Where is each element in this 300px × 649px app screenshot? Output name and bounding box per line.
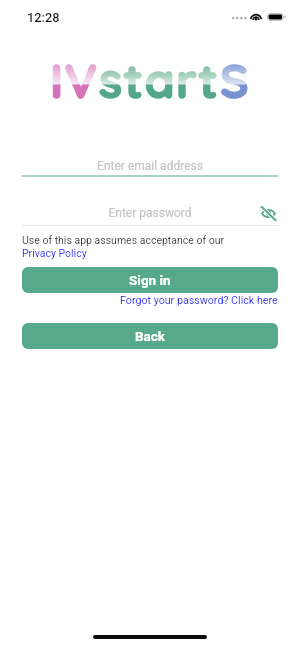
staticText: 12:28 [27, 10, 60, 25]
button[interactable]: Enter password [22, 202, 278, 224]
button[interactable]: Sign in [22, 267, 278, 293]
button[interactable]: Privacy Policy [22, 247, 87, 259]
button[interactable]: Back [22, 323, 278, 349]
button[interactable]: Forgot your password? Click here [120, 294, 278, 307]
staticText: Back [135, 328, 166, 344]
button[interactable]: Enter email address [22, 155, 278, 177]
staticText: IV [50, 50, 99, 110]
staticText: S [220, 50, 251, 110]
staticText: Enter password [108, 206, 192, 220]
staticText: Enter email address [97, 159, 203, 173]
button[interactable]: Show password [255, 200, 281, 226]
staticText: Sign in [129, 272, 171, 288]
staticText: start [99, 50, 220, 110]
staticText: Use of this app assumes acceptance of ou… [22, 234, 225, 246]
